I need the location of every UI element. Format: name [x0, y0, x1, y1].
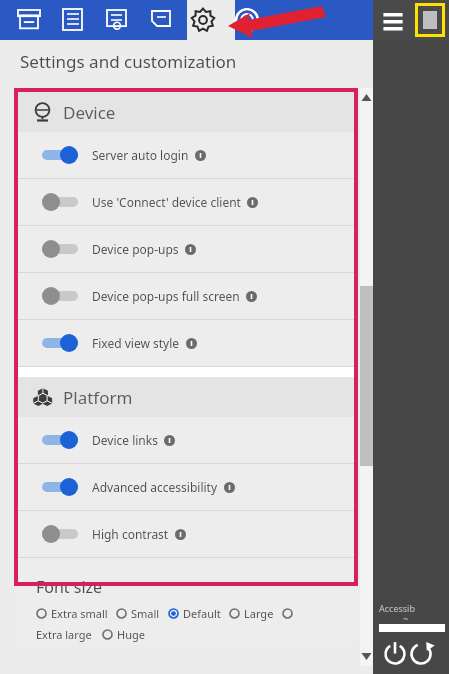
button[interactable]: Default	[168, 606, 221, 621]
staticText: Huge	[117, 627, 145, 642]
button[interactable]: Certificate	[100, 3, 134, 37]
button[interactable]: High contrast	[18, 511, 354, 557]
button[interactable]: Huge	[102, 627, 145, 642]
button[interactable]: Panel	[415, 3, 445, 37]
button[interactable]: Power	[381, 640, 409, 668]
button[interactable]: Refresh	[407, 640, 435, 668]
staticText: Extra large	[36, 627, 92, 642]
button[interactable]: Extra small	[36, 606, 108, 621]
button[interactable]: Server auto login	[18, 132, 354, 178]
button[interactable]: Menu	[381, 8, 405, 32]
staticText: Default	[183, 606, 221, 621]
button[interactable]: Device links	[18, 417, 354, 463]
staticText: Use 'Connect' device client	[92, 194, 241, 210]
button[interactable]: Settings	[186, 3, 220, 37]
button[interactable]: Use 'Connect' device client	[18, 179, 354, 225]
button[interactable]: Document	[56, 3, 90, 37]
staticText: Device pop-ups	[92, 241, 179, 257]
staticText: Advanced accessibility	[92, 479, 218, 495]
staticText: ~	[403, 612, 409, 624]
staticText: Font size	[36, 576, 103, 598]
staticText: Extra small	[51, 606, 108, 621]
button[interactable]: Fixed view style	[18, 320, 354, 366]
button[interactable]: Advanced accessibility	[18, 464, 354, 510]
button[interactable]: Note	[144, 3, 178, 37]
staticText: Device links	[92, 432, 158, 448]
staticText: Large	[244, 606, 274, 621]
button[interactable]: Archive	[12, 3, 46, 37]
staticText: Platform	[63, 386, 133, 409]
button[interactable]: Small	[116, 606, 160, 621]
staticText: Device pop-ups full screen	[92, 288, 240, 304]
staticText: Fixed view style	[92, 335, 180, 351]
staticText: Settings and customization	[20, 50, 237, 73]
staticText: Server auto login	[92, 147, 189, 163]
button[interactable]: Large	[229, 606, 274, 621]
button[interactable]: Help	[230, 3, 264, 37]
staticText: High contrast	[92, 526, 169, 542]
staticText: Small	[131, 606, 160, 621]
button[interactable]: Device pop-ups full screen	[18, 273, 354, 319]
button[interactable]: Device pop-ups	[18, 226, 354, 272]
staticText: Device	[63, 101, 116, 124]
staticText: Accessib	[379, 602, 415, 614]
